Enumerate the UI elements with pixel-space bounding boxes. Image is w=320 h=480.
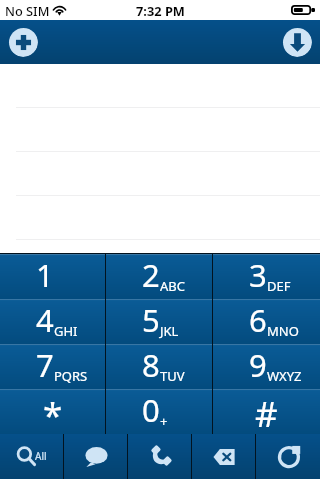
- staticText: #: [255, 390, 278, 435]
- button[interactable]: 8: [106, 344, 213, 389]
- staticText: 2: [142, 254, 160, 296]
- button[interactable]: #: [213, 389, 320, 434]
- staticText: 9: [249, 344, 267, 386]
- button[interactable]: 6: [213, 299, 320, 344]
- button[interactable]: 1: [0, 254, 106, 299]
- button[interactable]: 3: [213, 254, 320, 299]
- button[interactable]: Search all: [0, 434, 64, 479]
- staticText: 7:32 PM: [136, 2, 185, 19]
- staticText: PQRS: [54, 367, 88, 385]
- staticText: No SIM: [5, 2, 50, 19]
- staticText: *: [43, 391, 63, 436]
- button[interactable]: Call: [128, 434, 192, 479]
- staticText: MNO: [267, 322, 299, 340]
- staticText: 5: [142, 299, 160, 341]
- button[interactable]: 4: [0, 299, 106, 344]
- button[interactable]: Add contact: [8, 27, 38, 57]
- staticText: 7: [36, 344, 54, 386]
- staticText: 4: [36, 299, 54, 341]
- staticText: WXYZ: [267, 367, 302, 385]
- staticText: JKL: [160, 322, 179, 340]
- staticText: 0: [142, 389, 160, 431]
- staticText: DEF: [267, 277, 291, 295]
- button[interactable]: 7: [0, 344, 106, 389]
- button[interactable]: *: [0, 389, 106, 434]
- button[interactable]: 2: [106, 254, 213, 299]
- button[interactable]: Messages: [64, 434, 128, 479]
- staticText: All: [35, 449, 47, 463]
- button[interactable]: 5: [106, 299, 213, 344]
- button[interactable]: 9: [213, 344, 320, 389]
- staticText: 3: [249, 254, 267, 296]
- staticText: 8: [142, 344, 160, 386]
- button[interactable]: Backspace: [192, 434, 256, 479]
- staticText: +: [160, 412, 168, 430]
- button[interactable]: Redial: [256, 434, 320, 479]
- staticText: ABC: [160, 277, 185, 295]
- staticText: TUV: [160, 367, 185, 385]
- button[interactable]: 0: [106, 389, 213, 434]
- staticText: GHI: [54, 322, 78, 340]
- staticText: 1: [36, 254, 54, 296]
- button[interactable]: Download: [282, 27, 312, 57]
- staticText: 6: [249, 299, 267, 341]
